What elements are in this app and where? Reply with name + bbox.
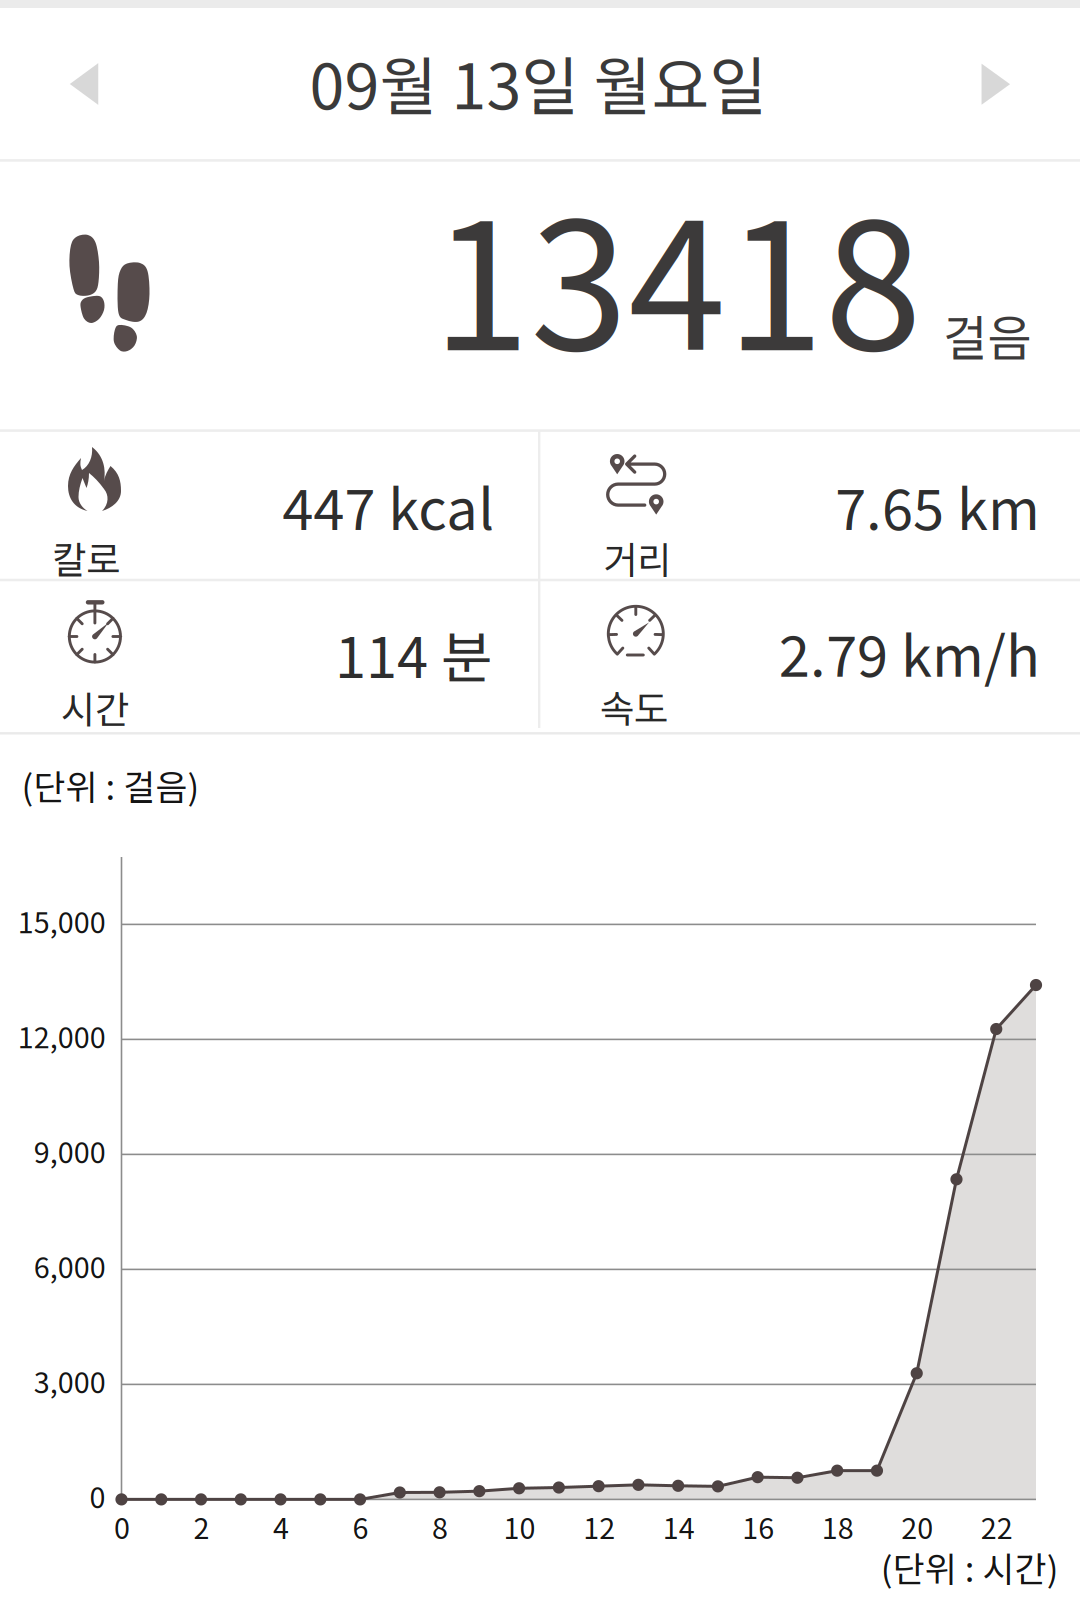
staticText: 12,000 bbox=[18, 1015, 106, 1056]
staticText: 13418 bbox=[432, 146, 922, 401]
staticText: 6,000 bbox=[34, 1245, 106, 1286]
staticText: 걸음 bbox=[943, 300, 1031, 369]
staticText: 0 bbox=[89, 1475, 105, 1516]
staticText: 4 bbox=[273, 1506, 289, 1547]
staticText: 3,000 bbox=[34, 1360, 106, 1401]
staticText: 8 bbox=[432, 1506, 448, 1547]
staticText: (단위 : 걸음) bbox=[21, 760, 199, 810]
staticText: 12 bbox=[583, 1506, 615, 1547]
staticText: 2 bbox=[193, 1506, 209, 1547]
staticText: 0 bbox=[114, 1506, 130, 1547]
staticText: (단위 : 시간) bbox=[881, 1542, 1059, 1592]
staticText: 14 bbox=[663, 1506, 695, 1547]
staticText: 15,000 bbox=[18, 900, 106, 941]
staticText: 20 bbox=[901, 1506, 933, 1547]
staticText: 09월 13일 월요일 bbox=[310, 37, 768, 127]
staticText: 18 bbox=[822, 1506, 854, 1547]
staticText: 거리 bbox=[603, 531, 671, 585]
staticText: 16 bbox=[742, 1506, 774, 1547]
staticText: 시간 bbox=[61, 680, 129, 734]
staticText: 2.79 km/h bbox=[779, 612, 1040, 693]
staticText: 447 kcal bbox=[282, 465, 494, 546]
staticText: 7.65 km bbox=[835, 465, 1040, 546]
button[interactable]: Previous day bbox=[9, 8, 159, 160]
staticText: 114 분 bbox=[335, 613, 493, 694]
staticText: 9,000 bbox=[34, 1130, 106, 1171]
staticText: 22 bbox=[981, 1506, 1013, 1547]
staticText: 속도 bbox=[600, 679, 668, 734]
staticText: 10 bbox=[504, 1506, 536, 1547]
staticText: 6 bbox=[353, 1506, 369, 1547]
button[interactable]: Next day bbox=[921, 8, 1071, 160]
staticText: 칼로 bbox=[52, 530, 120, 584]
